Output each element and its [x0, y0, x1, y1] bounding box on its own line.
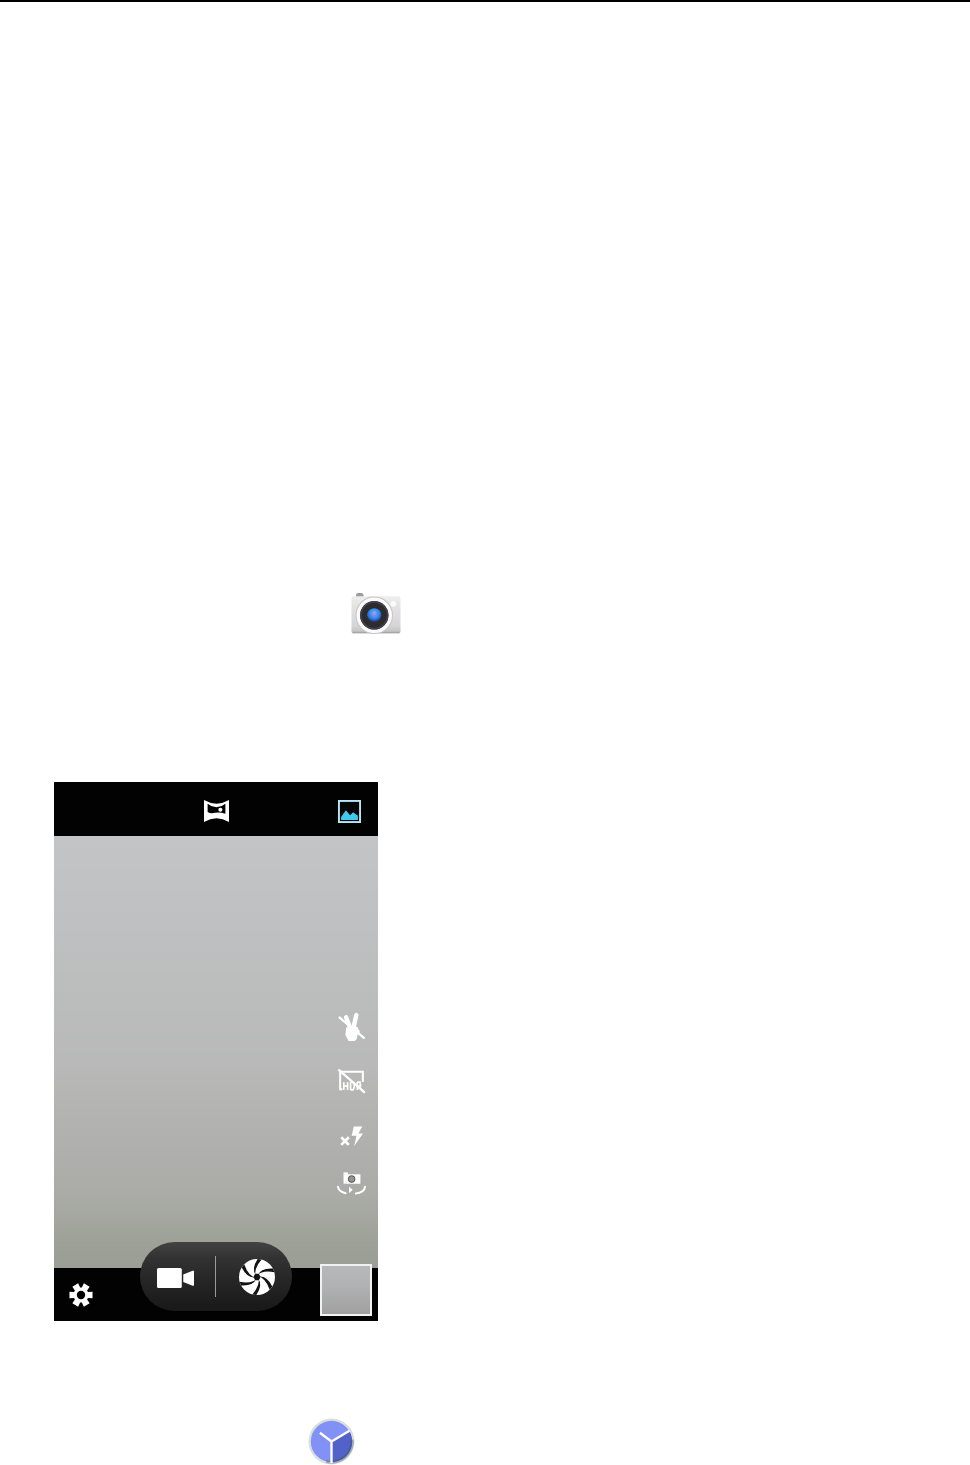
button[interactable]: Gesture shot off — [334, 1010, 368, 1044]
button[interactable]: Switch camera — [334, 1163, 368, 1197]
button[interactable]: Camera app icon — [351, 593, 401, 634]
button[interactable]: Settings — [62, 1276, 99, 1313]
button[interactable]: Last photo — [322, 1266, 370, 1314]
button[interactable]: Take photo — [217, 1242, 292, 1311]
button[interactable]: Record video — [140, 1242, 215, 1311]
button[interactable]: HDR off — [334, 1063, 368, 1097]
button[interactable]: Beauty face — [199, 794, 233, 828]
button[interactable]: Flash off — [334, 1116, 368, 1150]
button[interactable]: Clock app icon — [308, 1418, 355, 1465]
button[interactable]: Gallery — [332, 794, 366, 828]
